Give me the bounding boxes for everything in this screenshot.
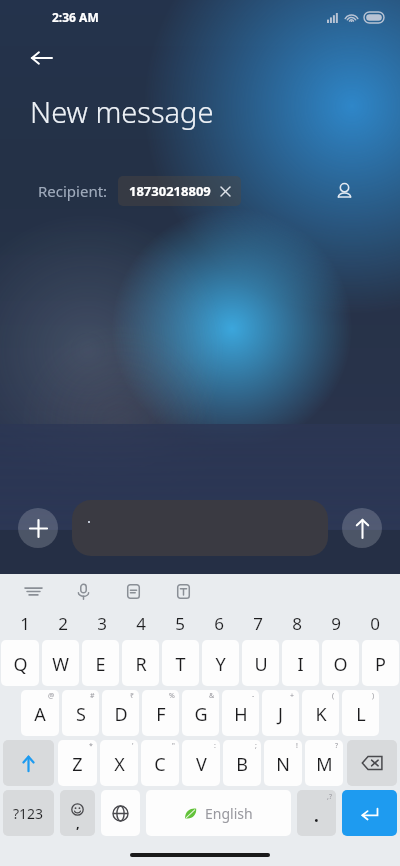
staticText: 0 — [370, 612, 380, 635]
button[interactable]: 3 — [82, 608, 121, 638]
button[interactable]: ' — [100, 740, 138, 786]
staticText: @ — [48, 691, 55, 701]
staticText: 8 — [292, 612, 302, 635]
button[interactable]: P — [362, 640, 399, 686]
staticText: ,? — [327, 792, 332, 802]
staticText: 9 — [331, 612, 341, 635]
staticText: P — [375, 652, 386, 677]
button[interactable] — [72, 500, 328, 556]
staticText: ; — [255, 741, 257, 751]
button[interactable]: + — [262, 690, 299, 736]
button[interactable]: Voice input — [70, 578, 96, 604]
staticText: H — [234, 702, 248, 727]
button[interactable]: Y — [202, 640, 239, 686]
staticText: + — [290, 691, 295, 701]
button[interactable]: Menu — [20, 578, 46, 604]
button[interactable]: % — [142, 690, 179, 736]
button[interactable]: Emoji — [60, 790, 95, 836]
button[interactable]: ! — [264, 740, 302, 786]
staticText: W — [52, 652, 69, 677]
button[interactable]: U — [242, 640, 279, 686]
staticText: 4 — [136, 612, 146, 635]
button[interactable]: Enter — [342, 790, 397, 836]
button[interactable]: & — [182, 690, 219, 736]
staticText: O — [333, 652, 348, 677]
staticText: & — [209, 691, 215, 701]
staticText: New message — [30, 92, 214, 131]
button[interactable]: " — [141, 740, 179, 786]
button[interactable]: O — [322, 640, 359, 686]
button[interactable]: T — [162, 640, 199, 686]
button[interactable]: 0 — [355, 608, 394, 638]
staticText: K — [315, 702, 327, 727]
button[interactable]: 9 — [316, 608, 355, 638]
staticText: Z — [72, 752, 83, 777]
button[interactable]: ) — [342, 690, 379, 736]
staticText: 1 — [20, 612, 30, 635]
button[interactable]: Q — [1, 640, 39, 686]
staticText: ( — [332, 691, 335, 701]
button[interactable]: : — [182, 740, 220, 786]
button[interactable]: ?123 — [3, 790, 54, 836]
staticText: 5 — [175, 612, 185, 635]
staticText: L — [356, 702, 366, 727]
button[interactable]: @ — [21, 690, 59, 736]
button[interactable]: R — [122, 640, 159, 686]
button[interactable]: * — [58, 740, 97, 786]
staticText: - — [252, 691, 255, 701]
button[interactable]: ( — [302, 690, 339, 736]
staticText: Q — [13, 652, 28, 677]
staticText: ) — [372, 691, 375, 701]
staticText: : — [214, 741, 216, 751]
button[interactable]: Change language — [101, 790, 140, 836]
staticText: F — [156, 702, 166, 727]
button[interactable]: 8 — [277, 608, 316, 638]
button[interactable]: ? — [305, 740, 343, 786]
button[interactable]: Clipboard — [120, 578, 146, 604]
staticText: " — [172, 741, 175, 751]
staticText: U — [254, 652, 268, 677]
staticText: ! — [296, 741, 298, 751]
button[interactable]: 6 — [199, 608, 238, 638]
staticText: R — [135, 652, 147, 677]
button[interactable]: # — [62, 690, 99, 736]
button[interactable]: Shift — [3, 740, 54, 786]
staticText: S — [76, 702, 86, 727]
staticText: English — [205, 804, 253, 823]
button[interactable]: 5 — [160, 608, 199, 638]
staticText: . — [314, 804, 319, 827]
staticText: 18730218809 — [129, 182, 211, 200]
staticText: A — [34, 702, 46, 727]
button[interactable]: Back — [18, 34, 66, 82]
staticText: ₹ — [130, 691, 135, 701]
staticText: 7 — [253, 612, 263, 635]
staticText: Y — [215, 652, 226, 677]
button[interactable]: ₹ — [102, 690, 139, 736]
staticText: D — [114, 702, 128, 727]
button[interactable]: E — [82, 640, 119, 686]
staticText: % — [169, 691, 175, 701]
staticText: X — [114, 752, 125, 777]
button[interactable]: English — [146, 790, 291, 836]
staticText: ' — [132, 741, 134, 751]
button[interactable]: 2 — [44, 608, 82, 638]
button[interactable]: ,? — [297, 790, 336, 836]
button[interactable]: ; — [223, 740, 261, 786]
staticText: B — [236, 752, 248, 777]
staticText: C — [154, 752, 166, 777]
staticText: Recipient: — [38, 181, 108, 201]
button[interactable]: I — [282, 640, 319, 686]
button[interactable]: 18730218809 — [118, 176, 241, 206]
staticText: M — [316, 752, 333, 777]
button[interactable]: W — [42, 640, 79, 686]
button[interactable]: Backspace — [347, 740, 397, 786]
button[interactable]: Choose contact — [326, 173, 362, 209]
button[interactable]: Text mode — [170, 578, 196, 604]
button[interactable]: Send — [342, 508, 382, 548]
button[interactable]: 4 — [121, 608, 160, 638]
button[interactable]: Add attachment — [18, 508, 58, 548]
button[interactable]: 7 — [238, 608, 277, 638]
staticText: I — [297, 652, 304, 677]
button[interactable]: - — [222, 690, 259, 736]
button[interactable]: 1 — [6, 608, 44, 638]
